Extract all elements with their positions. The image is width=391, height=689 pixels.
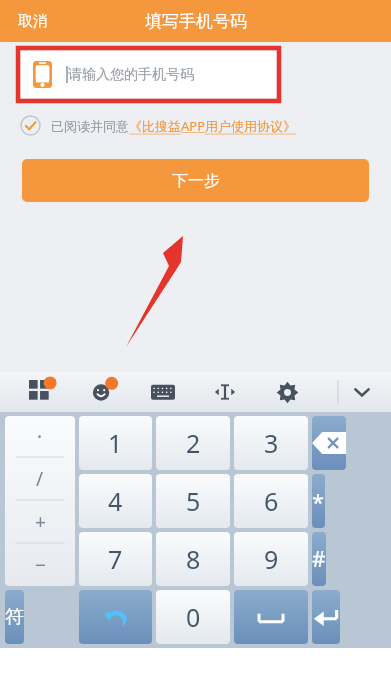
- staticText: 3: [264, 426, 279, 460]
- button[interactable]: 《比搜益APP用户使用协议》: [129, 117, 297, 135]
- staticText: 0: [186, 600, 201, 634]
- staticText: 9: [264, 542, 279, 576]
- button[interactable]: 7: [79, 532, 152, 586]
- button[interactable]: 9: [234, 532, 308, 586]
- button[interactable]: 符: [5, 590, 24, 644]
- staticText: 2: [186, 426, 201, 460]
- button[interactable]: Keyboard layout: [144, 373, 182, 411]
- button[interactable]: Enter: [312, 590, 340, 644]
- button[interactable]: Emoji: [84, 373, 122, 411]
- staticText: 取消: [18, 12, 48, 31]
- staticText: 符: [5, 605, 24, 629]
- button[interactable]: 6: [234, 474, 308, 528]
- button[interactable]: 4: [79, 474, 152, 528]
- staticText: 下一步: [172, 171, 220, 191]
- staticText: 5: [186, 484, 201, 518]
- button[interactable]: 1: [79, 416, 152, 470]
- button[interactable]: 下一步: [22, 159, 369, 202]
- button[interactable]: 已阅读并同意: [20, 115, 297, 136]
- staticText: −: [35, 552, 46, 578]
- staticText: 4: [108, 484, 123, 518]
- button[interactable]: Move cursor: [206, 373, 244, 411]
- staticText: 7: [108, 542, 123, 576]
- button[interactable]: Settings: [268, 373, 306, 411]
- button[interactable]: 0: [156, 590, 230, 644]
- button[interactable]: #: [312, 532, 326, 586]
- button[interactable]: *: [312, 474, 325, 528]
- staticText: 6: [264, 484, 279, 518]
- staticText: ·: [37, 424, 43, 450]
- button[interactable]: [234, 590, 308, 644]
- button[interactable]: 8: [156, 532, 230, 586]
- staticText: *: [312, 486, 325, 516]
- button[interactable]: 3: [234, 416, 308, 470]
- button[interactable]: 请输入您的手机号码: [21, 51, 276, 98]
- button[interactable]: 5: [156, 474, 230, 528]
- staticText: +: [35, 509, 46, 535]
- button[interactable]: ·: [5, 416, 75, 586]
- staticText: 请输入您的手机号码: [68, 66, 194, 84]
- button[interactable]: 取消: [10, 6, 56, 37]
- button[interactable]: Backspace: [312, 416, 346, 470]
- staticText: #: [312, 545, 326, 574]
- staticText: 8: [186, 542, 201, 576]
- staticText: 已阅读并同意: [51, 118, 129, 134]
- staticText: /: [36, 466, 44, 492]
- staticText: 填写手机号码: [145, 11, 247, 32]
- staticText: 1: [108, 426, 123, 460]
- button[interactable]: [79, 590, 152, 644]
- button[interactable]: 2: [156, 416, 230, 470]
- button[interactable]: Hide keyboard: [339, 372, 385, 412]
- button[interactable]: Apps: [22, 373, 60, 411]
